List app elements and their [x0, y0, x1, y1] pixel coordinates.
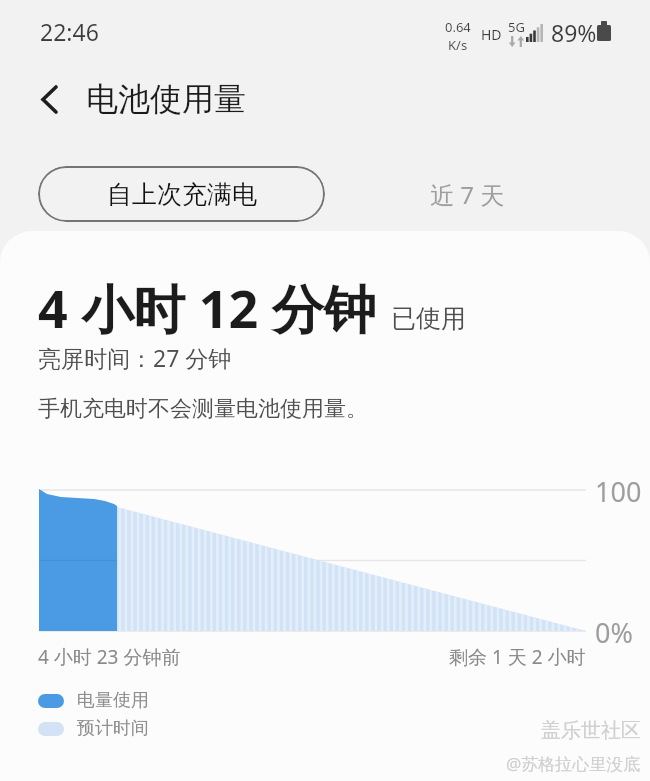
staticText: 0.64: [445, 18, 471, 36]
button[interactable]: 自上次充满电: [38, 166, 325, 222]
staticText: HD: [481, 25, 502, 44]
staticText: 预计时间: [77, 717, 149, 740]
staticText: 手机充电时不会测量电池使用量。: [38, 395, 368, 423]
staticText: 盖乐世社区: [541, 718, 641, 743]
staticText: @苏格拉心里没底: [506, 752, 641, 775]
staticText: 22:46: [40, 16, 99, 47]
button[interactable]: 近 7 天: [408, 166, 526, 222]
staticText: 电池使用量: [86, 79, 246, 119]
staticText: 0%: [595, 614, 633, 651]
staticText: K/s: [448, 36, 468, 54]
staticText: 自上次充满电: [107, 179, 257, 210]
staticText: 5G: [508, 18, 525, 36]
staticText: 近 7 天: [430, 178, 505, 211]
staticText: 已使用: [391, 303, 466, 334]
staticText: 89%: [551, 17, 597, 48]
staticText: 100: [595, 473, 642, 510]
staticText: 亮屏时间：27 分钟: [38, 342, 232, 373]
staticText: 剩余 1 天 2 小时: [449, 644, 586, 670]
button[interactable]: Back: [26, 76, 72, 122]
staticText: 4 小时 23 分钟前: [38, 644, 181, 670]
staticText: 电量使用: [77, 689, 149, 712]
staticText: 4 小时 12 分钟: [38, 272, 376, 343]
